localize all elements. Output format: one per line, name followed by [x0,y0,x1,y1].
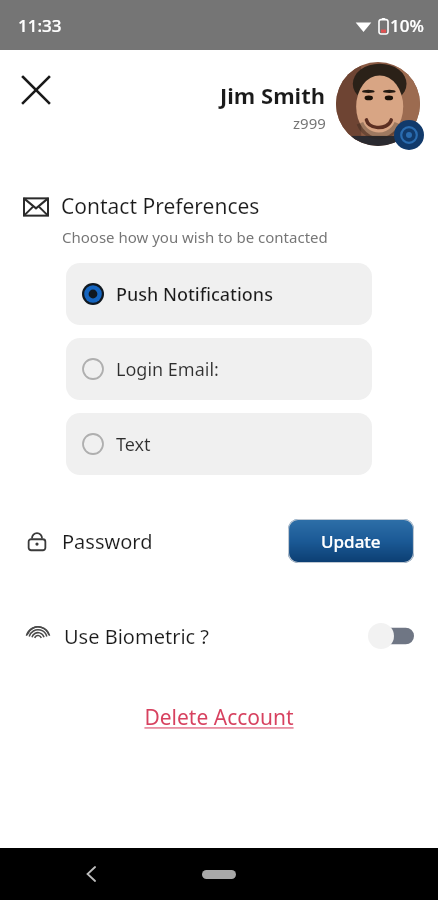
button[interactable]: Push Notifications [66,263,372,325]
staticText: Choose how you wish to be contacted [62,227,328,247]
button[interactable]: Back [72,854,112,894]
staticText: Text [116,432,151,457]
staticText: 11:33 [18,14,62,37]
staticText: Update [321,530,381,553]
button[interactable]: Update [288,519,414,563]
button[interactable]: Login Email: [66,338,372,400]
staticText: Login Email: [116,357,219,382]
button[interactable]: Text [66,413,372,475]
staticText: z999 [293,113,326,133]
staticText: Jim Smith [220,80,326,110]
staticText: 10% [390,14,424,37]
staticText: Delete Account [144,703,294,732]
button[interactable]: Close [12,66,60,114]
button[interactable]: Home [189,859,249,889]
button[interactable]: Use Biometric toggle [368,623,414,649]
staticText: Contact Preferences [61,192,260,221]
button[interactable]: Delete Account [132,697,306,738]
staticText: Use Biometric ? [64,623,210,650]
staticText: Push Notifications [116,282,273,307]
staticText: Password [62,528,153,555]
button[interactable]: Change profile photo [336,62,424,150]
